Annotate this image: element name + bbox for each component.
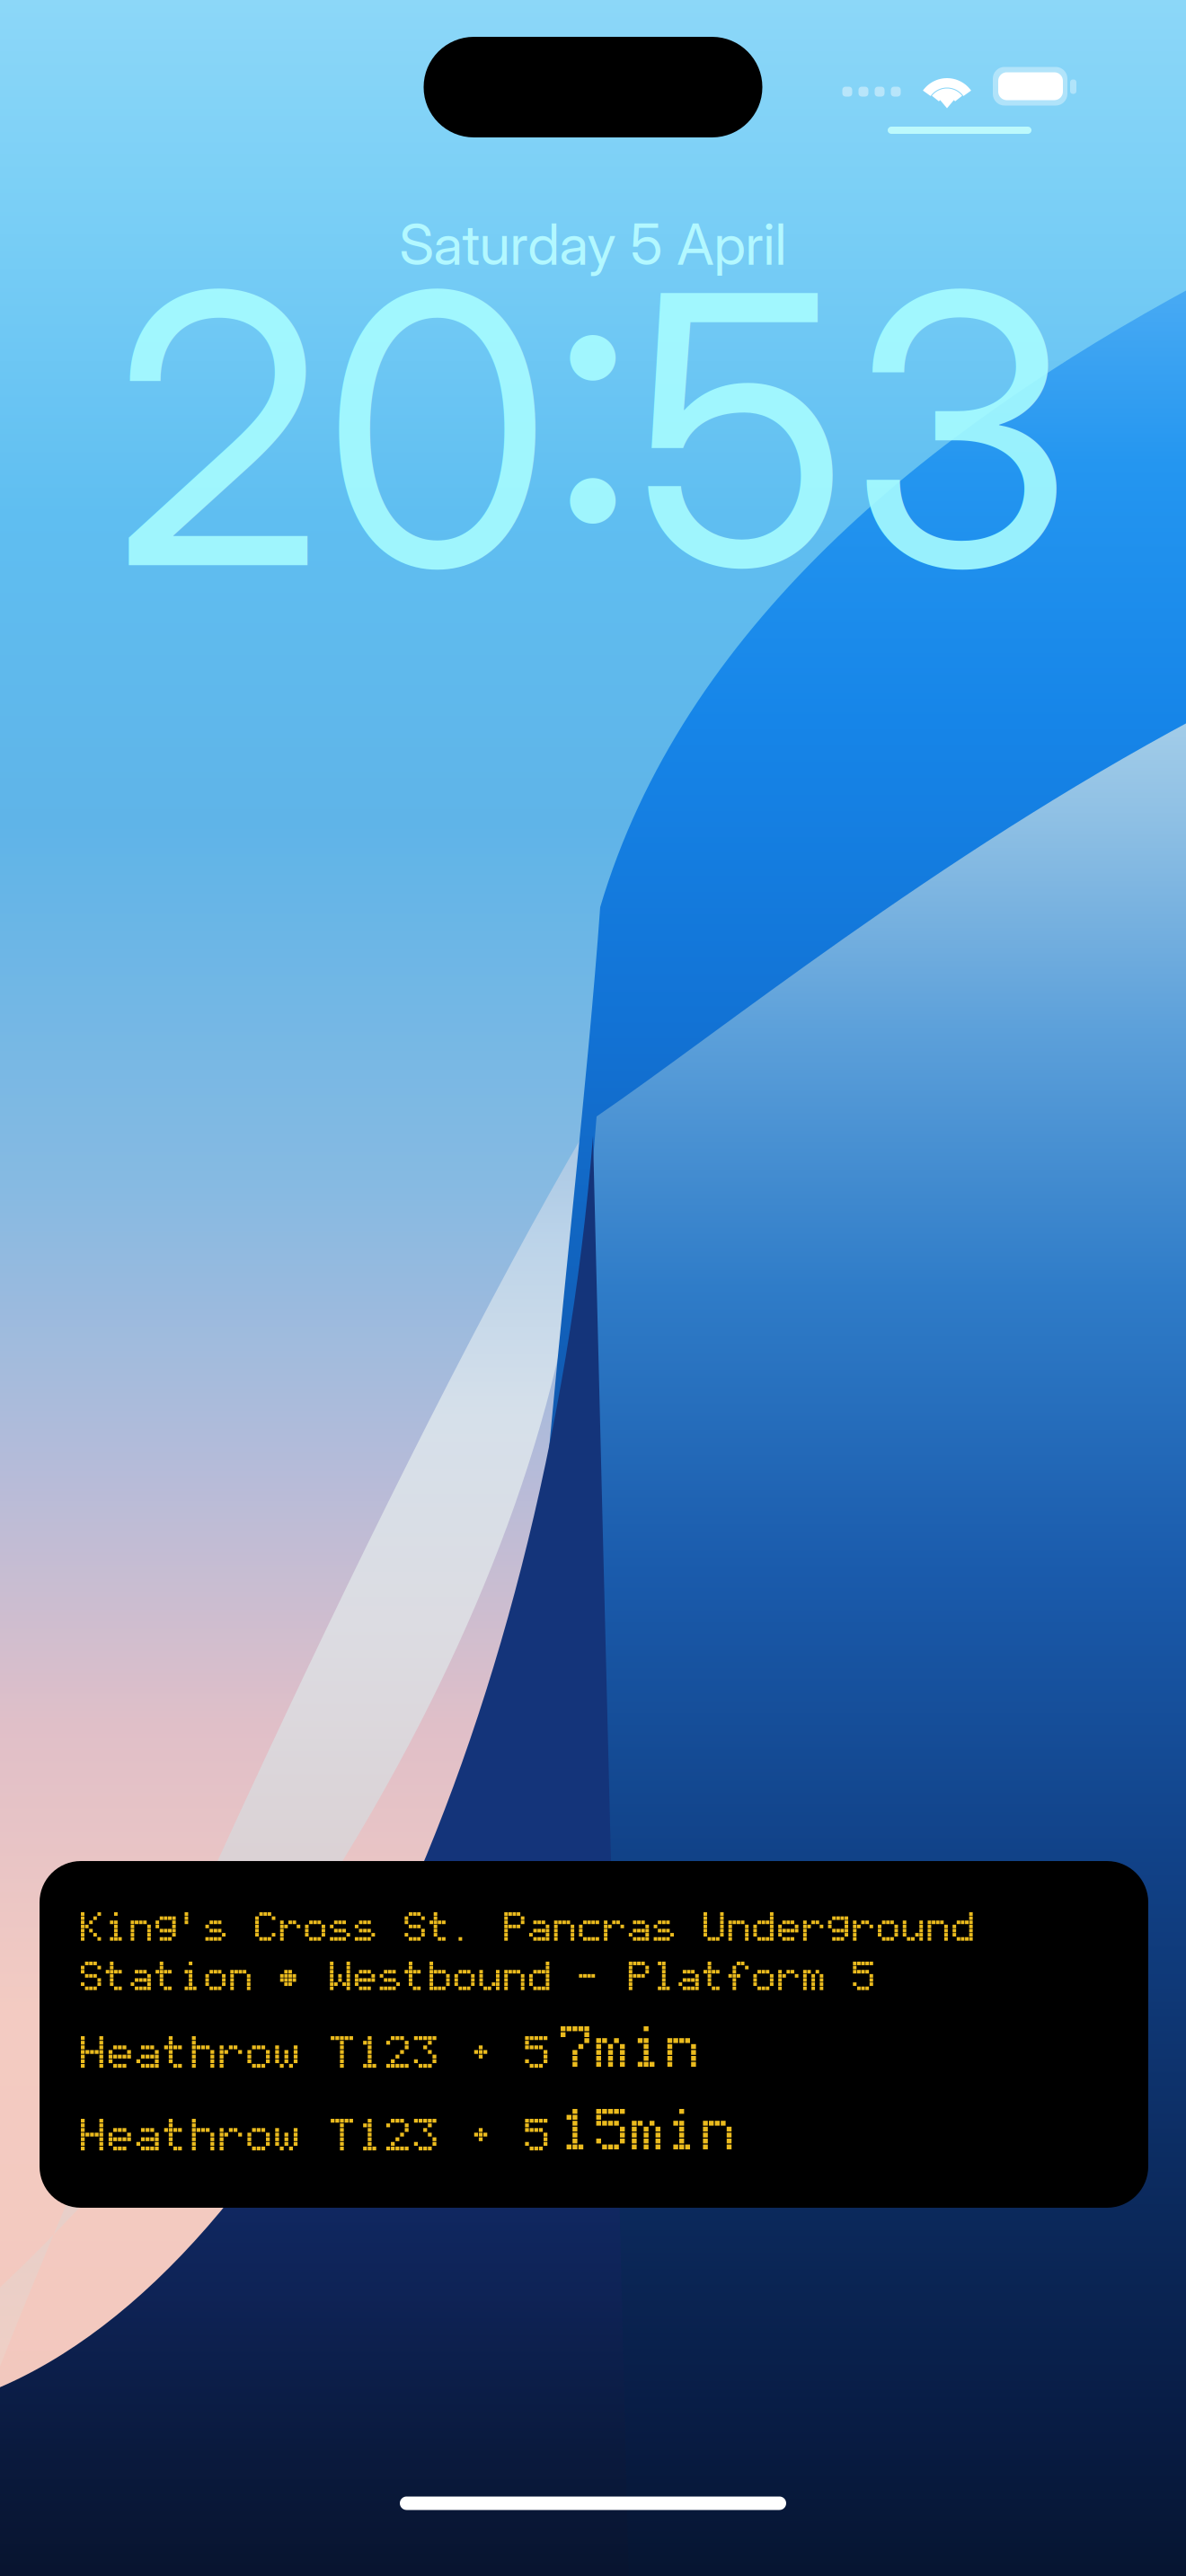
staticText: 20:53	[113, 203, 1073, 655]
button[interactable]	[40, 1861, 1148, 2208]
staticText: Saturday 5 April	[399, 210, 787, 278]
